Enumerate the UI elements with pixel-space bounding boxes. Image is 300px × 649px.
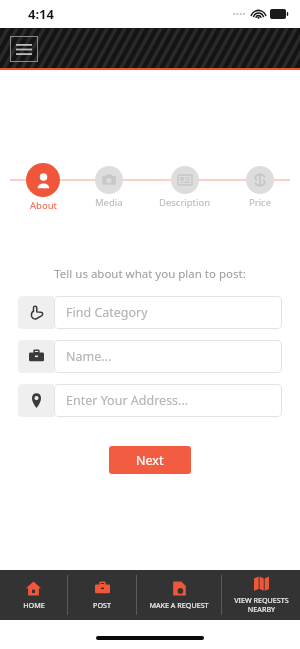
staticText: Tell us about what you plan to post: (0, 266, 300, 282)
staticText: Enter Your Address... (66, 392, 189, 409)
button[interactable]: About (26, 160, 60, 212)
staticText: MAKE A REQUEST (149, 600, 209, 610)
button[interactable]: Enter Your Address... (18, 384, 282, 417)
button[interactable]: VIEW REQUESTS NEARBY (222, 570, 300, 620)
button[interactable]: Next (109, 446, 191, 474)
button[interactable]: Menu (10, 36, 38, 62)
staticText: Price (249, 196, 272, 209)
button[interactable]: HOME (0, 570, 67, 620)
staticText: About (30, 199, 57, 212)
staticText: Name... (66, 348, 112, 365)
staticText: Next (136, 452, 164, 469)
button[interactable]: MAKE A REQUEST (137, 570, 221, 620)
button[interactable]: POST (68, 570, 136, 620)
staticText: Media (95, 196, 123, 209)
button[interactable]: Description (159, 160, 211, 209)
button[interactable]: Name... (18, 340, 282, 373)
staticText: Description (159, 196, 211, 209)
button[interactable]: Price (246, 160, 274, 209)
staticText: POST (93, 600, 111, 610)
button[interactable]: Media (95, 160, 123, 209)
staticText: Find Category (66, 304, 148, 321)
staticText: VIEW REQUESTS NEARBY (234, 595, 289, 614)
staticText: HOME (23, 600, 45, 610)
button[interactable]: Find Category (18, 296, 282, 329)
staticText: 4:14 (28, 5, 54, 23)
